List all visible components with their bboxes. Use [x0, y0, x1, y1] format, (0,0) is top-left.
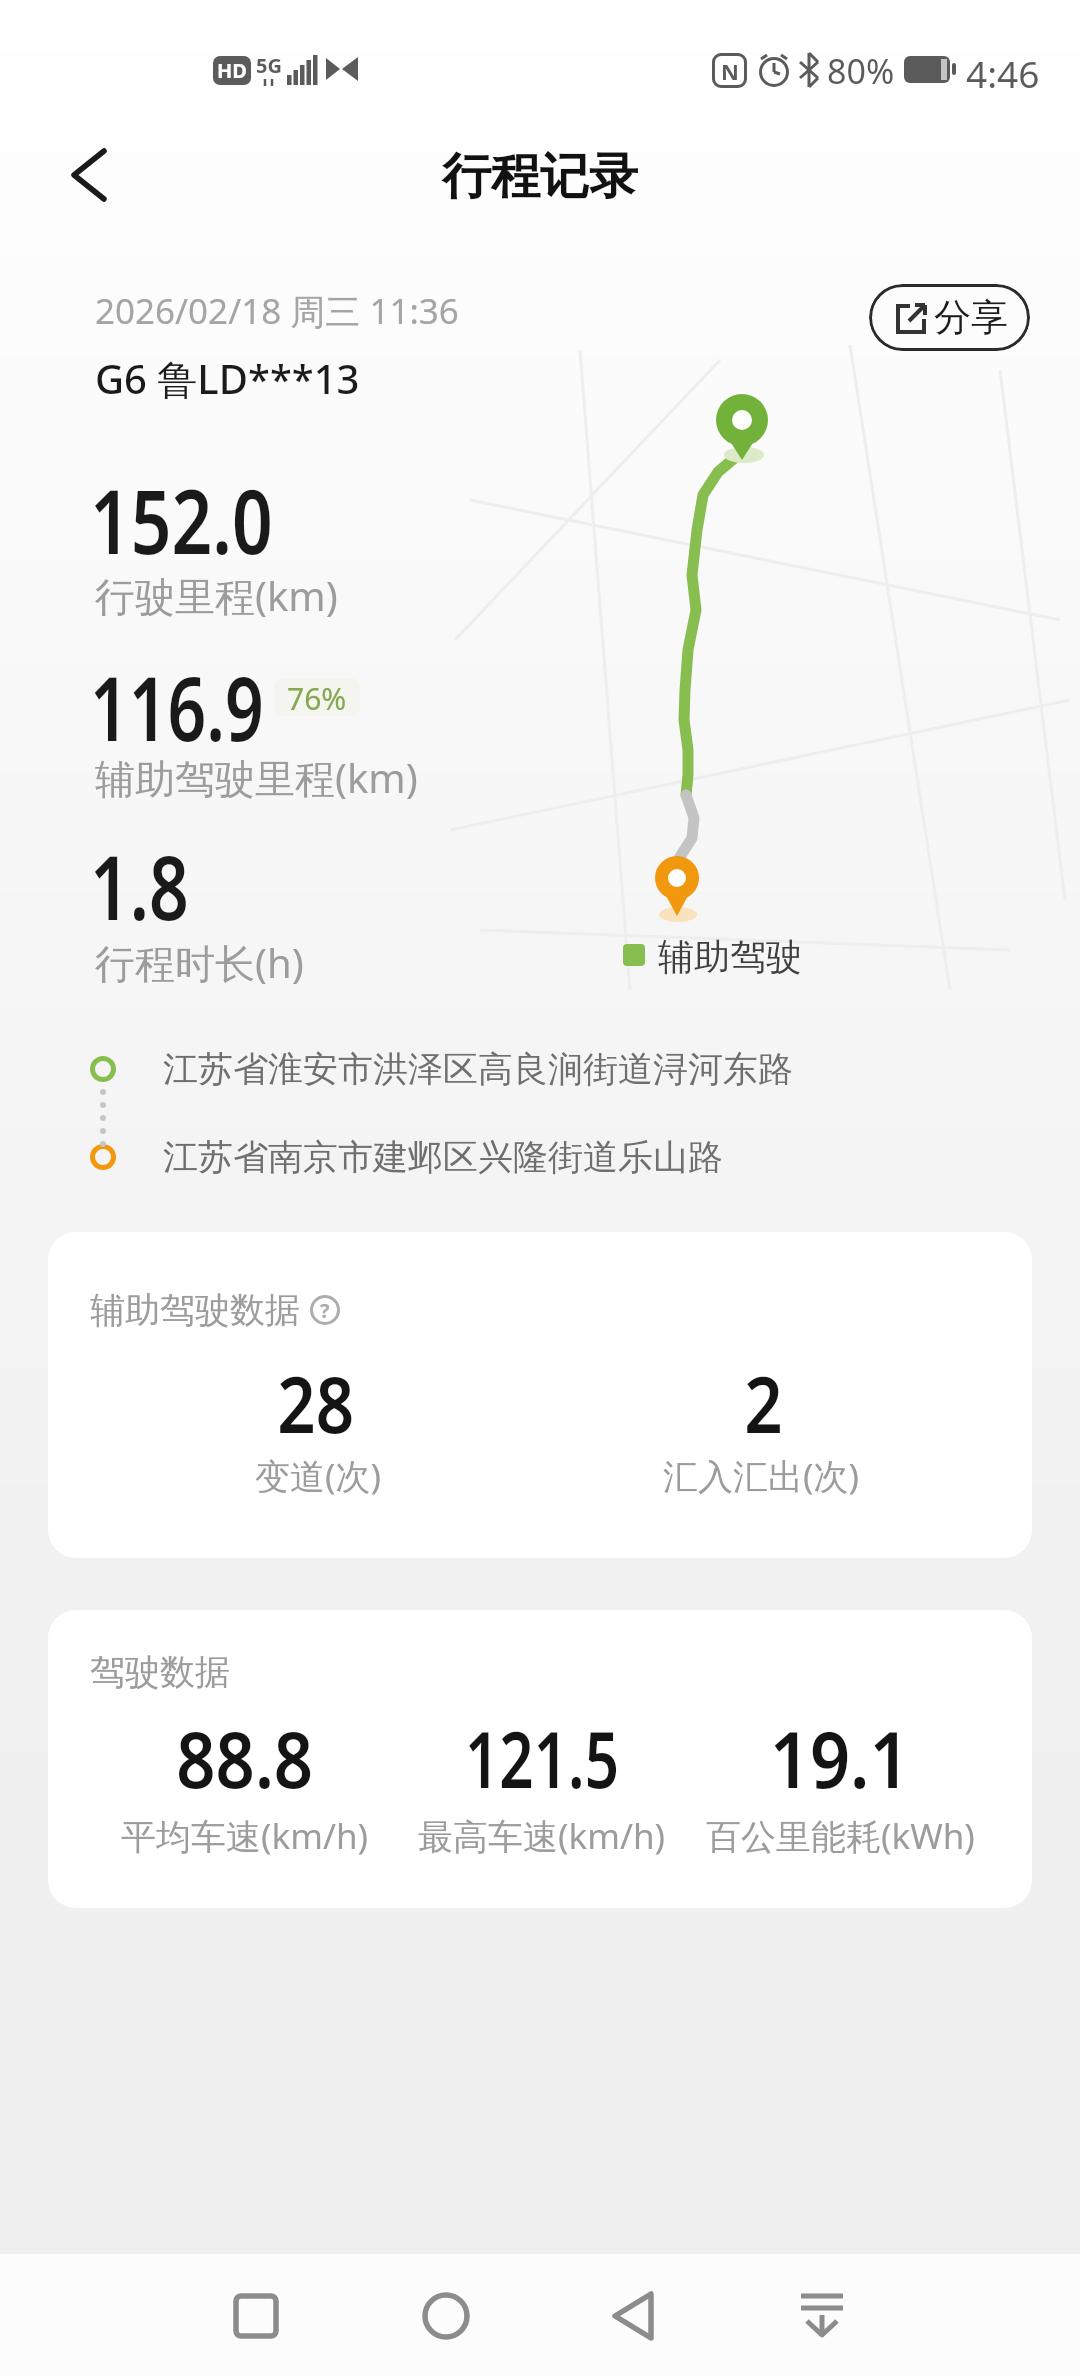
staticText: 80% [827, 48, 895, 92]
staticText: HD [217, 57, 247, 84]
staticText: 江苏省淮安市洪泽区高良涧街道浔河东路 [163, 1047, 793, 1091]
staticText: 行程记录 [442, 146, 638, 208]
button[interactable] [206, 2266, 306, 2366]
staticText: 最高车速(km/h) [418, 1812, 666, 1860]
staticText: 驾驶数据 [90, 1650, 230, 1694]
staticText: N [721, 56, 739, 86]
staticText: 行驶里程(km) [95, 568, 338, 623]
staticText: 1.8 [90, 826, 189, 946]
staticText: G6 鲁LD***13 [95, 351, 360, 406]
staticText: 平均车速(km/h) [121, 1812, 369, 1860]
button[interactable] [772, 2266, 872, 2366]
staticText: 百公里能耗(kWh) [706, 1812, 975, 1860]
staticText: 5G [256, 52, 282, 79]
button[interactable] [396, 2266, 496, 2366]
staticText: 江苏省南京市建邺区兴隆街道乐山路 [163, 1135, 723, 1179]
staticText: 行程时长(h) [95, 935, 304, 990]
button[interactable]: 分享 [869, 284, 1030, 351]
staticText: 88.8 [176, 1705, 314, 1811]
staticText: 分享 [934, 294, 1008, 341]
button[interactable] [52, 140, 124, 212]
staticText: 152.0 [90, 460, 273, 580]
staticText: 116.9 [90, 647, 264, 767]
staticText: 4:46 [966, 48, 1040, 92]
staticText: 28 [277, 1350, 355, 1456]
button[interactable]: ? [310, 1295, 340, 1325]
staticText: 辅助驾驶 [658, 934, 802, 979]
staticText: 76% [287, 678, 347, 716]
staticText: 辅助驾驶数据 [90, 1288, 300, 1332]
staticText: 121.5 [465, 1705, 619, 1811]
staticText: 辅助驾驶里程(km) [95, 750, 418, 805]
staticText: 2 [744, 1350, 783, 1456]
staticText: 变道(次) [255, 1452, 382, 1500]
staticText: 19.1 [770, 1705, 910, 1811]
staticText: 汇入汇出(次) [663, 1452, 860, 1500]
button[interactable] [584, 2266, 684, 2366]
staticText: ? [320, 1297, 330, 1324]
staticText: 2026/02/18 周三 11:36 [95, 287, 459, 335]
